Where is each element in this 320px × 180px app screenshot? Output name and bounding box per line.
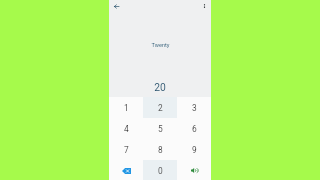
staticText: 9 (192, 145, 197, 155)
staticText: 6 (192, 124, 197, 134)
button[interactable]: Back (109, 0, 123, 13)
staticText: 7 (124, 145, 129, 155)
button[interactable]: Speak (177, 160, 211, 180)
button[interactable]: 5 (143, 118, 177, 139)
staticText: Twenty (151, 42, 170, 49)
button[interactable]: 0 (143, 160, 177, 180)
button[interactable]: 6 (177, 118, 211, 139)
staticText: 4 (124, 124, 129, 134)
staticText: 8 (158, 145, 163, 155)
button[interactable]: 2 (143, 97, 177, 118)
staticText: 0 (158, 166, 163, 176)
button[interactable]: 3 (177, 97, 211, 118)
button[interactable]: 7 (109, 139, 143, 160)
button[interactable]: 1 (109, 97, 143, 118)
staticText: 5 (158, 124, 163, 134)
button[interactable]: 9 (177, 139, 211, 160)
button[interactable]: Backspace (109, 160, 143, 180)
staticText: 20 (154, 81, 166, 93)
button[interactable]: 4 (109, 118, 143, 139)
staticText: 1 (124, 103, 129, 113)
staticText: 3 (192, 103, 197, 113)
button[interactable]: 8 (143, 139, 177, 160)
button[interactable]: More options (197, 0, 211, 13)
staticText: 2 (158, 103, 163, 113)
